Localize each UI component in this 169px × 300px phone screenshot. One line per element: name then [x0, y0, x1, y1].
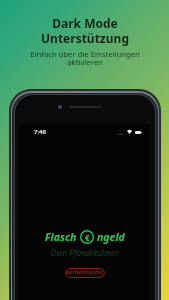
staticText: Einfach über die Einstellungen aktiviere… — [30, 49, 140, 67]
staticText: € — [85, 232, 90, 243]
staticText: Dark Mode Unterstützung — [41, 15, 129, 46]
button[interactable]: werbefinanziert — [65, 268, 105, 278]
staticText: Dein Pfandrechner — [19, 247, 150, 258]
staticText: werbefinanziert — [65, 268, 105, 278]
staticText: Flasch — [45, 230, 77, 244]
staticText: ngeld — [97, 230, 125, 244]
staticText: 7:46 — [34, 128, 46, 136]
